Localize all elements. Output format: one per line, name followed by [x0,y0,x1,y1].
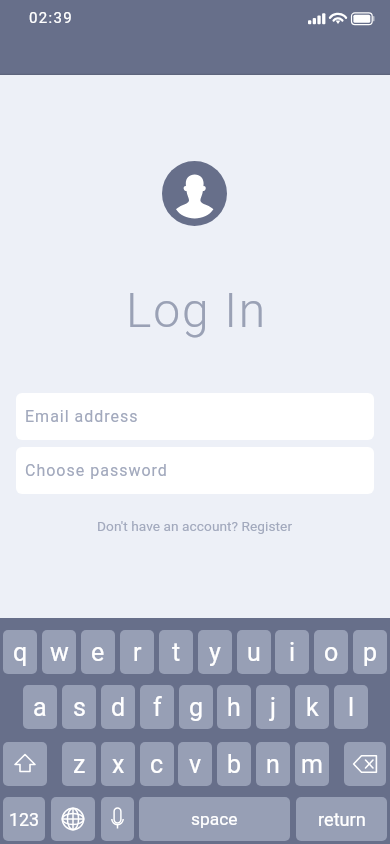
button[interactable]: u [237,630,271,674]
staticText: z [73,750,86,779]
staticText: o [324,638,339,667]
staticText: g [189,693,204,722]
button[interactable]: j [256,685,290,729]
staticText: x [112,750,125,779]
button[interactable]: b [217,742,251,786]
staticText: d [111,693,126,722]
staticText: k [306,693,319,722]
staticText: Don't have an account? Register [97,518,293,534]
button[interactable]: n [256,742,290,786]
staticText: y [209,638,221,667]
staticText: h [227,693,241,722]
button[interactable]: Dictation [101,797,134,841]
button[interactable]: q [3,630,37,674]
staticText: b [227,750,242,779]
staticText: q [13,638,28,667]
button[interactable]: Switch language [51,797,95,841]
button[interactable]: Don't have an account? Register [93,514,297,538]
button[interactable]: space [139,797,290,841]
staticText: Log In [126,282,268,338]
button[interactable]: d [101,685,135,729]
button[interactable]: x [101,742,135,786]
staticText: s [73,693,86,722]
staticText: j [270,693,276,722]
button[interactable]: m [295,742,329,786]
button[interactable]: 123 [3,797,45,841]
button[interactable]: Choose password [16,447,374,494]
button[interactable]: g [179,685,213,729]
button[interactable]: w [42,630,76,674]
button[interactable]: e [81,630,115,674]
staticText: r [133,638,142,667]
button[interactable]: Backspace [344,742,386,786]
button[interactable]: h [217,685,251,729]
staticText: Choose password [25,461,168,480]
button[interactable]: i [275,630,309,674]
button[interactable]: c [140,742,174,786]
button[interactable]: Shift [3,742,47,786]
staticText: l [348,693,355,722]
button[interactable]: v [178,742,212,786]
staticText: Email address [25,407,139,426]
staticText: v [189,750,202,779]
staticText: n [266,750,280,779]
staticText: m [301,750,323,779]
button[interactable]: o [314,630,348,674]
button[interactable]: t [159,630,193,674]
staticText: c [150,750,164,779]
staticText: 02:39 [29,9,74,27]
staticText: 123 [9,809,40,830]
button[interactable]: f [140,685,174,729]
staticText: i [289,638,296,667]
staticText: f [153,693,162,722]
button[interactable]: r [120,630,154,674]
staticText: a [33,693,47,722]
staticText: w [50,638,69,667]
staticText: return [318,809,366,830]
button[interactable]: l [334,685,368,729]
button[interactable]: z [62,742,96,786]
button[interactable]: return [296,797,387,841]
button[interactable]: k [295,685,329,729]
staticText: u [247,638,261,667]
staticText: t [172,638,181,667]
staticText: e [91,638,105,667]
button[interactable]: Email address [16,393,374,440]
button[interactable]: p [353,630,387,674]
staticText: p [363,638,378,667]
staticText: space [191,809,238,829]
button[interactable]: s [62,685,96,729]
button[interactable]: y [198,630,232,674]
button[interactable]: a [23,685,57,729]
